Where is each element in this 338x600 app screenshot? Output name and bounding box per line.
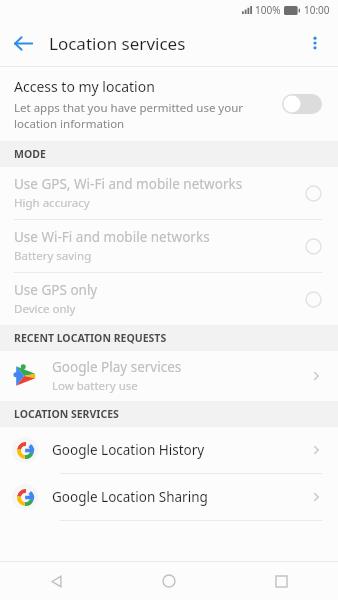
staticText: Use Wi-Fi and mobile networks	[14, 228, 210, 246]
button[interactable]: Use GPS, Wi-Fi and mobile networks	[0, 167, 338, 219]
staticText: Low battery use	[52, 378, 138, 394]
staticText: High accuracy	[14, 195, 90, 211]
staticText: Device only	[14, 301, 76, 317]
staticText: 10:00	[304, 3, 330, 17]
button[interactable]: Use Wi-Fi and mobile networks	[0, 220, 338, 272]
button[interactable]: Back	[0, 562, 112, 600]
staticText: 100%	[255, 3, 281, 17]
button[interactable]: More options	[292, 20, 338, 66]
button[interactable]: Google Location History	[0, 427, 338, 473]
staticText: Google Location History	[52, 441, 310, 459]
staticText: Let apps that you have permitted use you…	[14, 100, 244, 131]
staticText: RECENT LOCATION REQUESTS	[14, 331, 167, 345]
staticText: Battery saving	[14, 248, 92, 264]
button[interactable]: Use GPS only	[0, 273, 338, 325]
staticText: MODE	[14, 147, 46, 161]
staticText: Location services	[49, 32, 186, 55]
staticText: Google Location Sharing	[52, 488, 310, 506]
button[interactable]: Back	[0, 20, 46, 66]
button[interactable]: Recents	[225, 562, 338, 600]
staticText: Use GPS, Wi-Fi and mobile networks	[14, 175, 243, 193]
button[interactable]: Home	[112, 562, 225, 600]
staticText: Access to my location	[14, 77, 155, 96]
button[interactable]: Access to my location	[0, 67, 338, 141]
staticText: Use GPS only	[14, 281, 98, 299]
staticText: LOCATION SERVICES	[14, 407, 119, 421]
button[interactable]: Google Location Sharing	[0, 474, 338, 520]
button[interactable]: Google Play services	[0, 351, 338, 401]
staticText: Google Play services	[52, 358, 182, 376]
button[interactable]: Access to my location	[282, 91, 326, 117]
